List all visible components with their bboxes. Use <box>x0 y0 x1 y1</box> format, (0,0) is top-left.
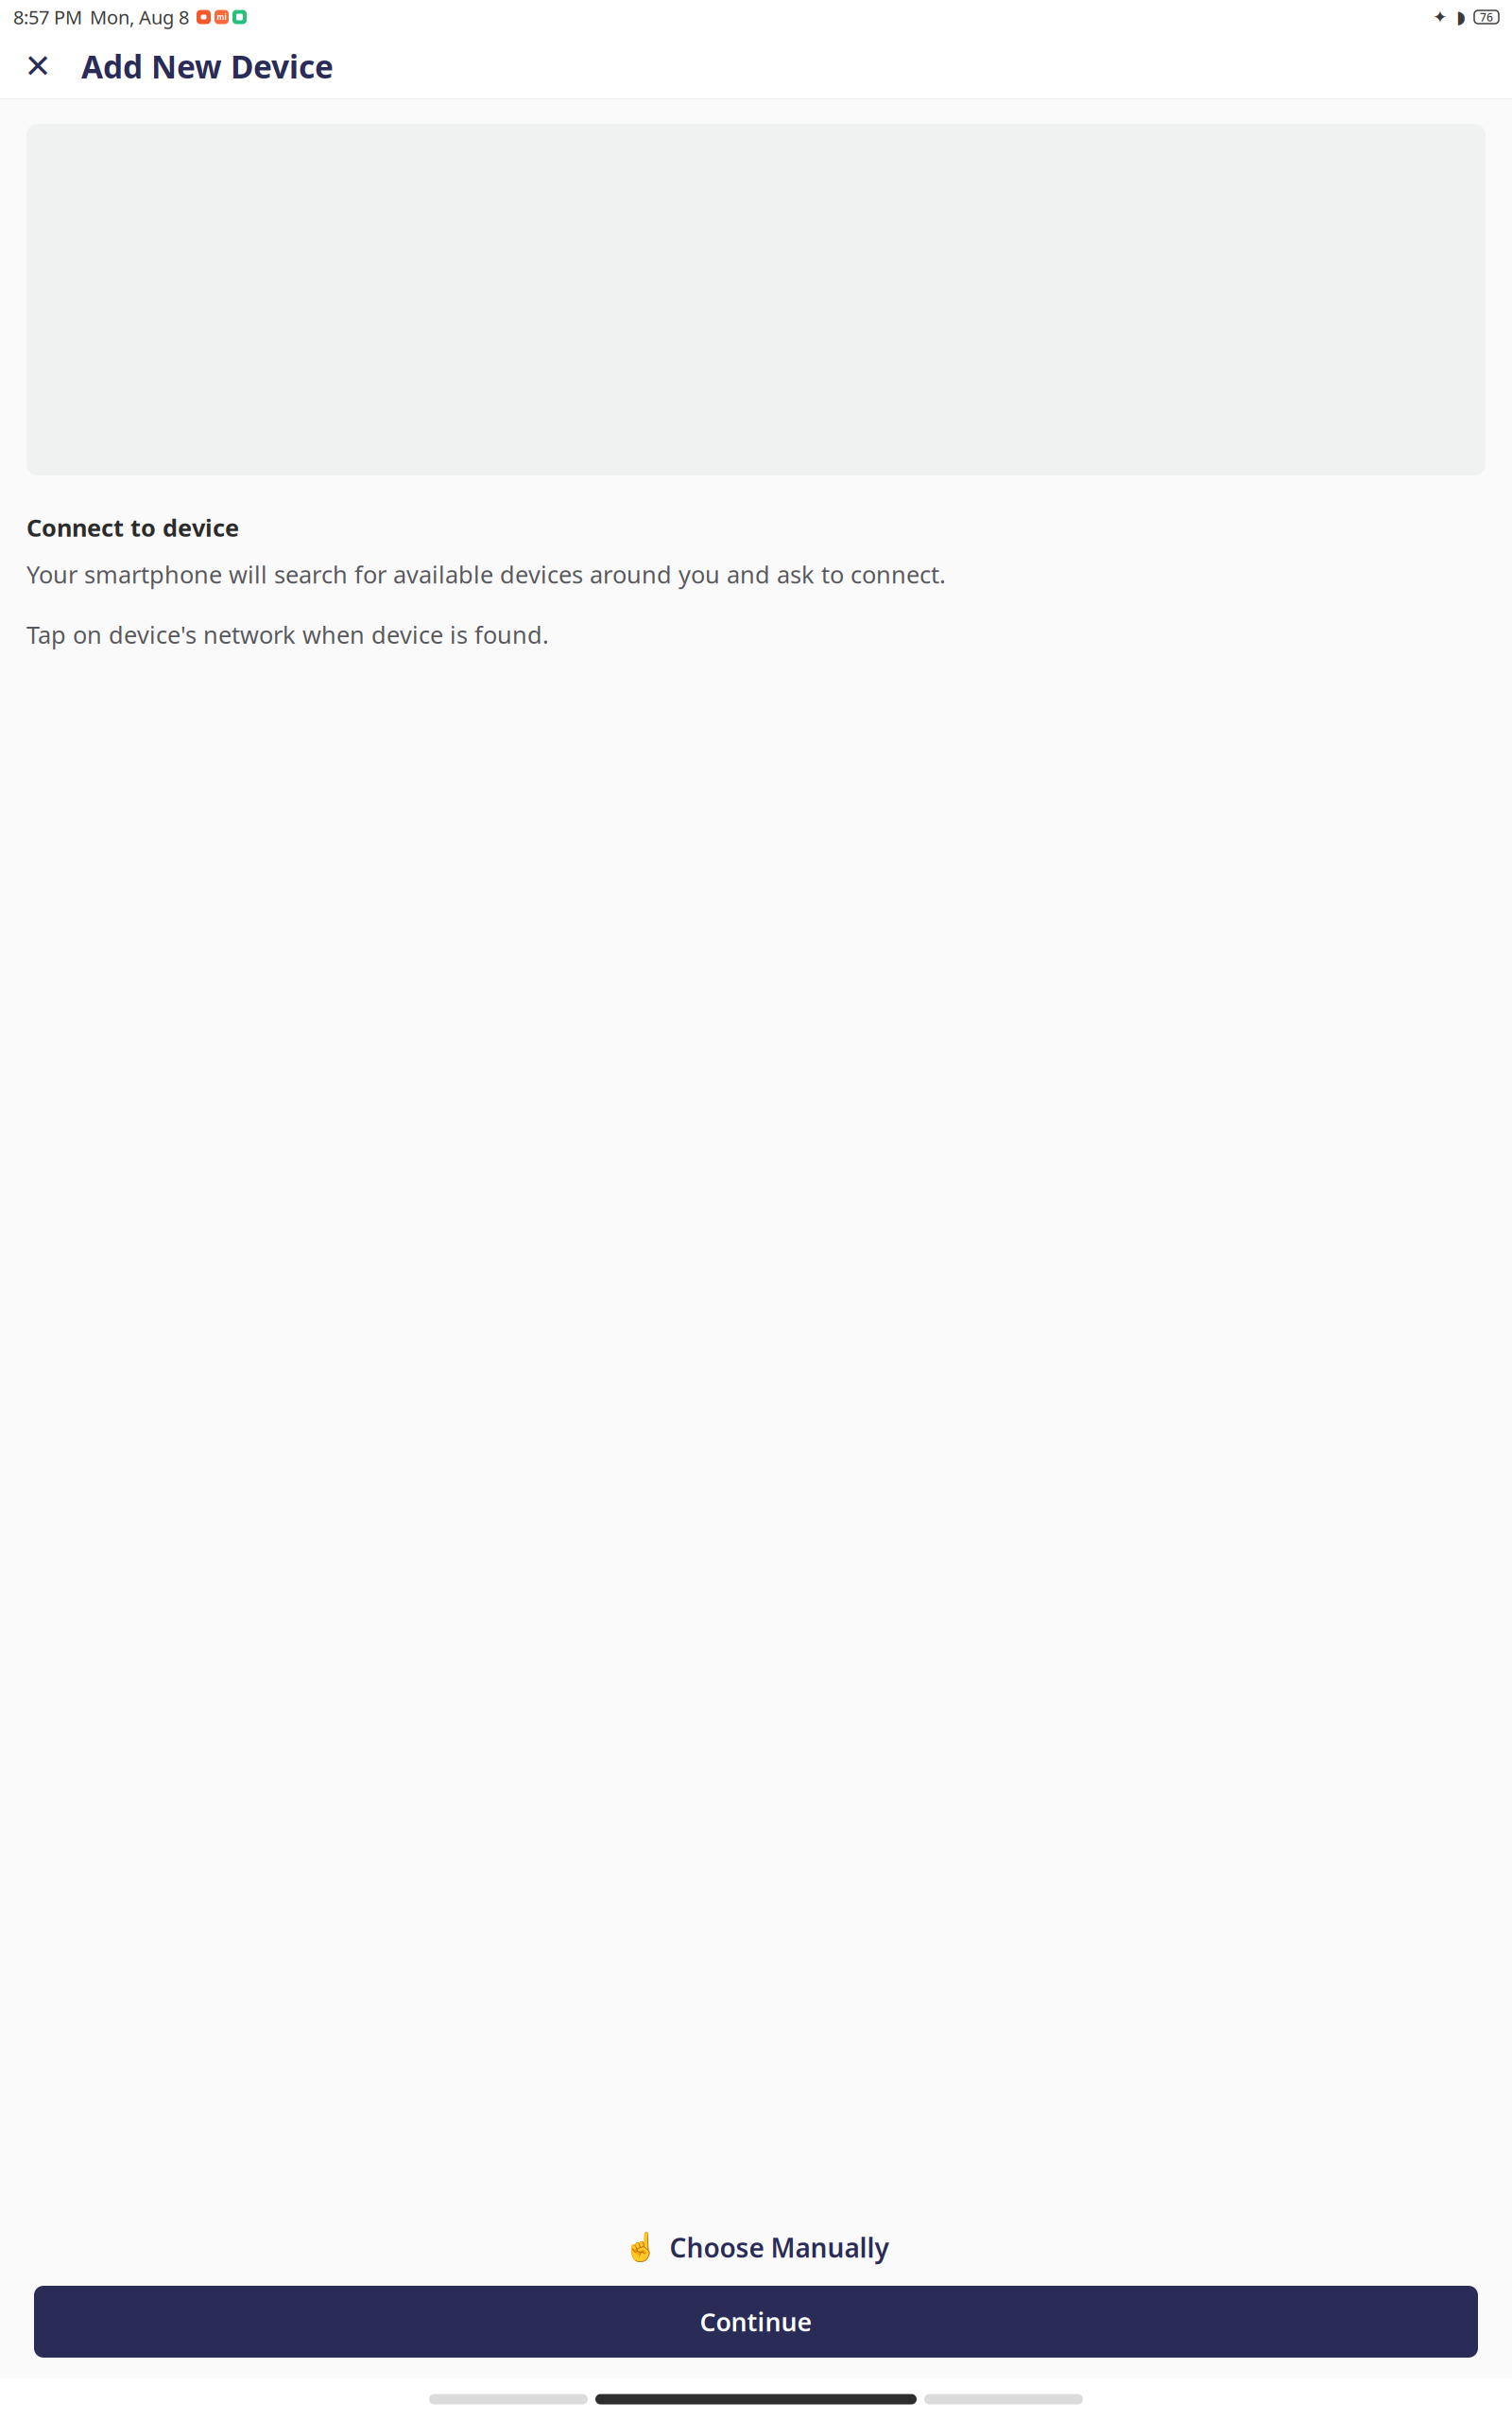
staticText: Connect to device <box>26 511 239 543</box>
staticText: mi <box>217 12 226 22</box>
staticText: Continue <box>700 2305 812 2338</box>
button[interactable]: Close <box>15 43 60 89</box>
staticText: ☝ <box>623 2232 658 2263</box>
staticText: Choose Manually <box>670 2230 889 2265</box>
staticText: Your smartphone will search for availabl… <box>26 558 946 590</box>
staticText: 76 <box>1480 9 1493 24</box>
button[interactable]: Continue <box>34 2286 1478 2358</box>
staticText: ✦ <box>1433 7 1448 27</box>
staticText: 8:57 PM <box>13 4 82 30</box>
button[interactable]: ☝ <box>606 2220 906 2274</box>
staticText: Tap on device's network when device is f… <box>26 619 549 650</box>
staticText: Add New Device <box>81 45 334 87</box>
staticText: ◗ <box>1456 7 1466 27</box>
staticText: Mon, Aug 8 <box>90 4 189 30</box>
button[interactable]: Add New Device <box>60 45 334 87</box>
staticText: ✕ <box>24 48 52 85</box>
